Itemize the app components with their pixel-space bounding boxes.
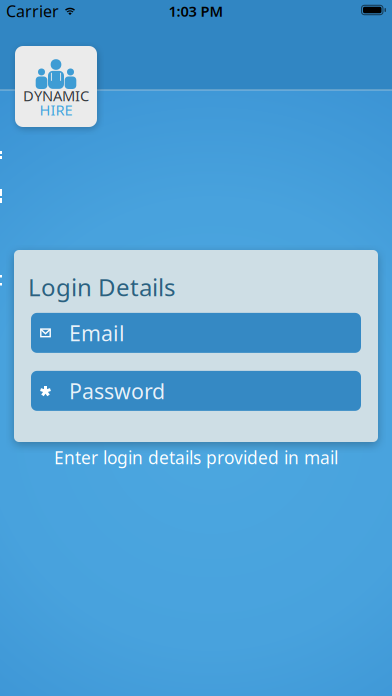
button[interactable]: Password: [31, 371, 361, 411]
staticText: Login Details: [28, 271, 175, 303]
staticText: DYNAMIC: [23, 86, 89, 105]
staticText: Carrier: [6, 0, 59, 22]
staticText: 1:03 PM: [168, 1, 223, 21]
staticText: HIRE: [39, 100, 72, 119]
staticText: Password: [69, 377, 165, 405]
button[interactable]: Email: [31, 313, 361, 353]
staticText: Enter login details provided in mail: [54, 446, 338, 469]
staticText: Email: [69, 319, 125, 347]
